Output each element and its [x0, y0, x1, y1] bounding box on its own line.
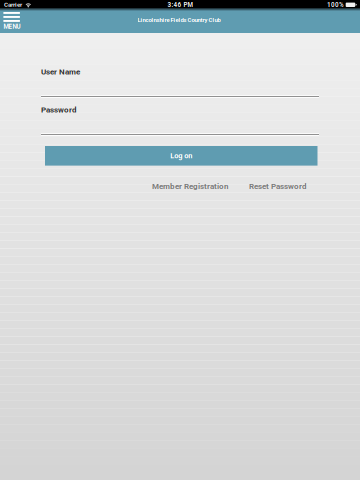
staticText: Password — [41, 105, 77, 114]
staticText: MENU — [3, 23, 20, 30]
button[interactable]: Password — [41, 105, 319, 136]
button[interactable]: Member Registration — [152, 182, 228, 191]
staticText: Reset Password — [249, 182, 307, 191]
staticText: Lincolnshire Fields Country Club — [137, 17, 220, 23]
staticText: 3:46 PM — [167, 1, 192, 8]
staticText: 100% — [327, 1, 344, 8]
button[interactable]: Log on — [45, 146, 317, 166]
staticText: Carrier — [4, 1, 22, 8]
staticText: User Name — [41, 67, 80, 76]
staticText: Member Registration — [152, 182, 228, 191]
button[interactable]: User Name — [41, 67, 319, 98]
staticText: Log on — [170, 151, 192, 160]
button[interactable]: Reset Password — [249, 182, 307, 191]
button[interactable]: Menu — [0, 8, 26, 33]
